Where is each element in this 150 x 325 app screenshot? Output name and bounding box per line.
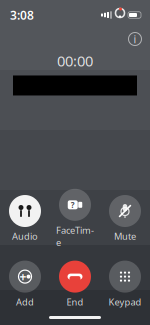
button[interactable]: + [6,261,44,308]
staticText: i [133,32,136,46]
button[interactable]: Call info [124,28,146,50]
button[interactable]: End [56,261,94,308]
button[interactable]: Keypad [106,261,144,308]
staticText: 3:08 [10,7,34,23]
button[interactable]: ? [56,189,94,249]
staticText: End [66,296,83,308]
button[interactable]: Audio [6,195,44,242]
staticText: ? [71,199,75,210]
button[interactable]: Mute [106,195,144,242]
staticText: Audio [12,230,38,242]
staticText: FaceTime [56,224,94,249]
staticText: Add [16,296,34,308]
staticText: Keypad [108,296,141,308]
staticText: + [19,269,26,284]
staticText: 00:00 [57,51,93,70]
staticText: Mute [114,230,136,242]
